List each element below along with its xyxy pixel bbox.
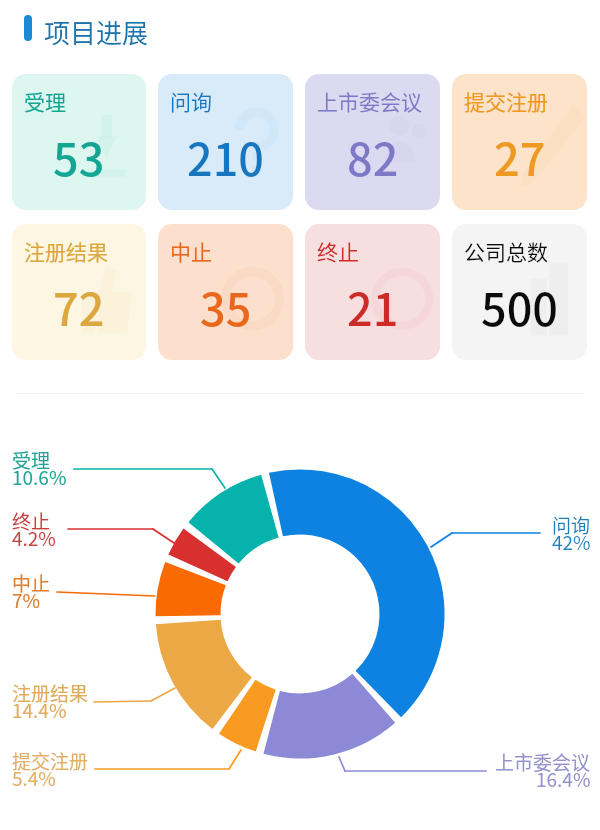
staticText: 受理 — [12, 446, 51, 474]
staticText: 53 — [53, 124, 105, 189]
button[interactable]: 中止 — [12, 569, 51, 614]
staticText: 终止 — [317, 236, 359, 266]
button[interactable]: 受理 — [12, 446, 67, 491]
staticText: 210 — [187, 124, 264, 189]
staticText: 16.4% — [536, 765, 591, 793]
staticText: 公司总数 — [464, 236, 548, 266]
staticText: 14.4% — [12, 696, 67, 724]
staticText: 上市委会议 — [317, 86, 422, 116]
staticText: 10.6% — [12, 463, 67, 491]
staticText: 项目进展 — [44, 13, 149, 51]
staticText: 提交注册 — [464, 86, 548, 116]
staticText: 注册结果 — [12, 679, 89, 707]
button[interactable]: 受理 — [12, 74, 146, 210]
staticText: 21 — [347, 274, 399, 339]
staticText: 受理 — [24, 86, 66, 116]
button[interactable]: 注册结果 — [12, 224, 146, 360]
staticText: 提交注册 — [12, 747, 89, 775]
button[interactable]: 问询 — [552, 511, 591, 556]
staticText: 终止 — [12, 507, 51, 535]
staticText: 注册结果 — [24, 236, 108, 266]
staticText: 问询 — [170, 86, 212, 116]
button[interactable]: 终止 — [12, 507, 56, 552]
staticText: 35 — [200, 274, 252, 339]
staticText: 27 — [494, 124, 546, 189]
staticText: 4.2% — [12, 524, 56, 552]
staticText: 中止 — [170, 236, 212, 266]
button[interactable]: 公司总数 — [452, 224, 587, 360]
button[interactable]: 上市委会议 — [495, 748, 591, 793]
button[interactable]: 问询 — [158, 74, 293, 210]
staticText: 5.4% — [12, 764, 56, 792]
button[interactable]: 终止 — [305, 224, 440, 360]
staticText: 中止 — [12, 569, 51, 597]
button[interactable]: 中止 — [158, 224, 293, 360]
other: 项目进展分布环形图 — [0, 0, 600, 830]
staticText: 问询 — [552, 511, 591, 539]
staticText: 82 — [347, 124, 399, 189]
button[interactable]: 提交注册 — [12, 747, 89, 792]
staticText: 500 — [481, 274, 558, 339]
staticText: 7% — [12, 586, 41, 614]
button[interactable]: 提交注册 — [452, 74, 587, 210]
staticText: 72 — [53, 274, 105, 339]
button[interactable]: 注册结果 — [12, 679, 89, 724]
staticText: 上市委会议 — [495, 748, 591, 776]
button[interactable]: 上市委会议 — [305, 74, 440, 210]
staticText: 42% — [552, 528, 591, 556]
